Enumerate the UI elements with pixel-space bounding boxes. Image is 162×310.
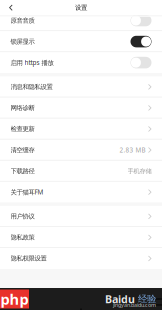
staticText: 网络诊断 [10, 104, 34, 112]
staticText: 用户协议 [10, 212, 34, 220]
staticText: 手机存储 [127, 167, 151, 175]
staticText: 消息和隐私设置 [10, 83, 52, 91]
staticText: 经验 [135, 293, 156, 305]
button[interactable]: 关于猫耳FM [0, 182, 162, 203]
staticText: 下载路径 [10, 167, 34, 175]
button[interactable]: Back [0, 0, 21, 15]
staticText: php [0, 289, 28, 309]
staticText: 关于猫耳FM [10, 188, 43, 196]
staticText: 检查更新 [10, 125, 34, 133]
staticText: 启用 https 播放 [10, 58, 53, 67]
button[interactable]: 清空缓存 [0, 139, 162, 161]
staticText: jingyan.baidu.com [113, 301, 156, 308]
staticText: 2.83 MB [119, 146, 145, 154]
button[interactable]: 检查更新 [0, 118, 162, 140]
staticText: 隐私权限设置 [10, 254, 46, 262]
button[interactable]: 消息和隐私设置 [0, 76, 162, 97]
staticText: 设置 [75, 4, 87, 12]
button[interactable]: 网络诊断 [0, 97, 162, 118]
button[interactable]: 隐私权限设置 [0, 248, 162, 269]
button[interactable]: 隐私政策 [0, 227, 162, 248]
button[interactable]: 用户协议 [0, 206, 162, 227]
staticText: Baidu [105, 292, 135, 306]
staticText: 锁屏显示 [10, 37, 34, 46]
staticText: 原音音质 [10, 16, 34, 25]
staticText: 隐私政策 [10, 233, 34, 241]
staticText: 清空缓存 [10, 146, 34, 154]
button[interactable]: 下载路径 [0, 161, 162, 182]
